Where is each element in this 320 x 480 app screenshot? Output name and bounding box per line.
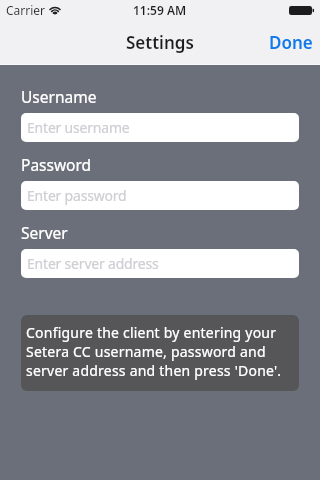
- staticText: Password: [21, 154, 92, 175]
- button[interactable]: Enter server address: [21, 249, 299, 278]
- other: Wi-Fi signal: [50, 6, 60, 15]
- staticText: Settings: [126, 31, 194, 54]
- staticText: Server: [21, 222, 68, 243]
- staticText: Enter server address: [27, 254, 159, 273]
- staticText: Enter password: [27, 186, 127, 205]
- staticText: Done: [269, 31, 313, 54]
- button[interactable]: Enter username: [21, 113, 299, 142]
- other: Battery full: [289, 6, 315, 15]
- staticText: Carrier: [6, 2, 46, 18]
- staticText: 11:59 AM: [133, 2, 187, 18]
- staticText: Username: [21, 86, 97, 107]
- staticText: Configure the client by entering your Se…: [26, 323, 294, 380]
- button[interactable]: Done: [257, 21, 320, 64]
- button[interactable]: Enter password: [21, 181, 299, 210]
- staticText: Enter username: [27, 118, 130, 137]
